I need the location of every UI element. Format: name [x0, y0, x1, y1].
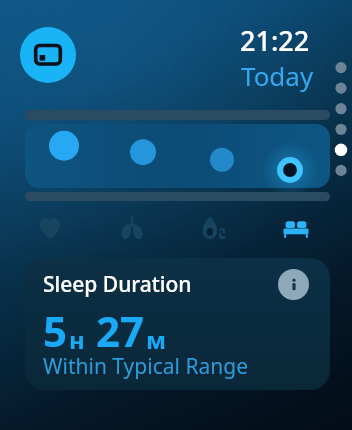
button[interactable]: Sleep Duration	[25, 258, 330, 390]
button[interactable]: Respiratory rate	[110, 206, 154, 250]
button[interactable]: Today	[241, 58, 314, 93]
staticText: н	[69, 323, 85, 356]
button[interactable]: Sleep	[274, 206, 318, 250]
button[interactable]: Info	[278, 269, 309, 300]
staticText: 27	[96, 302, 145, 359]
staticText: м	[146, 323, 167, 356]
button[interactable]: Blood oxygen	[192, 206, 236, 250]
staticText: Within Typical Range	[43, 352, 248, 381]
staticText: Today	[241, 58, 314, 93]
button[interactable]: Heart rate	[28, 206, 72, 250]
button[interactable]: Sleep app	[20, 27, 76, 83]
staticText: 21:22	[240, 22, 310, 59]
staticText: Sleep Duration	[43, 270, 192, 299]
button[interactable]: Sleep stages carousel	[25, 124, 330, 188]
staticText: 5	[43, 302, 68, 359]
